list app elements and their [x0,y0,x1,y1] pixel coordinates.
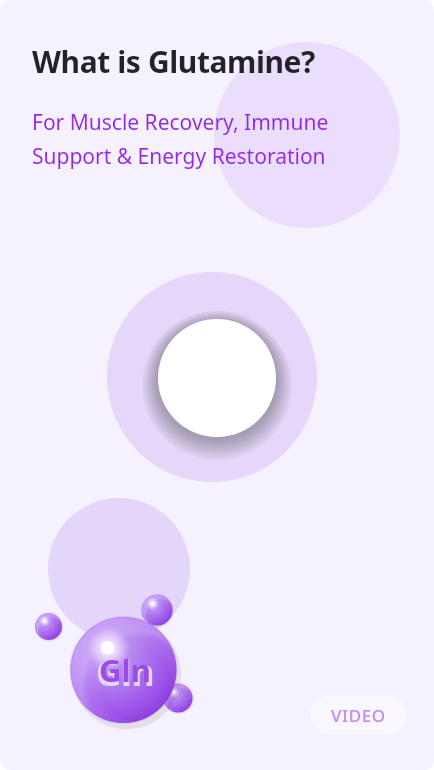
staticText: Gln [96,649,155,691]
staticText: For Muscle Recovery, Immune Support & En… [32,108,329,170]
button[interactable]: Play video [310,696,406,734]
staticText: VIDEO [331,704,386,727]
staticText: What is Glutamine? [32,41,316,82]
staticText: Gln [99,649,151,691]
